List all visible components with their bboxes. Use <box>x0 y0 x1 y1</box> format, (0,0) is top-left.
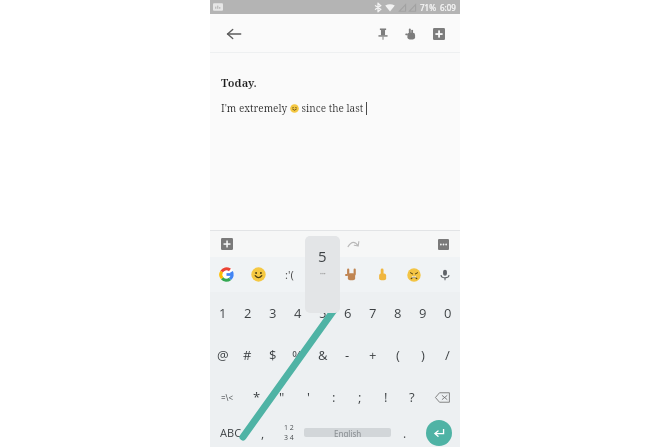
button[interactable]: Back <box>218 18 250 50</box>
staticText: 5 <box>319 304 327 322</box>
staticText: ) <box>421 346 425 364</box>
staticText: , <box>261 425 265 441</box>
button[interactable]: Number pad <box>274 418 304 447</box>
button[interactable]: ' <box>295 376 321 418</box>
staticText: English <box>334 428 362 437</box>
button[interactable]: Pointing up emoji <box>367 257 398 292</box>
button[interactable]: Enter <box>418 418 460 447</box>
button[interactable]: 4 <box>285 292 310 334</box>
button[interactable]: English <box>304 428 391 437</box>
staticText: ' <box>307 388 310 406</box>
button[interactable]: . <box>391 418 418 447</box>
button[interactable]: # <box>235 334 260 376</box>
button[interactable]: Redo <box>341 232 365 256</box>
button[interactable]: 3 <box>260 292 285 334</box>
staticText: ••• <box>320 271 326 278</box>
staticText: 6 <box>344 304 352 322</box>
button[interactable]: Google <box>210 257 242 292</box>
staticText: @ <box>217 346 229 364</box>
staticText: : <box>332 388 336 406</box>
staticText: - <box>345 346 350 364</box>
staticText: ! <box>384 388 388 406</box>
button[interactable]: * <box>244 376 269 418</box>
button[interactable]: Add <box>216 233 238 255</box>
staticText: ; <box>358 388 362 406</box>
button[interactable]: ; <box>347 376 373 418</box>
button[interactable]: :'( <box>274 257 305 292</box>
staticText: since the last <box>299 101 364 115</box>
button[interactable]: $ <box>260 334 285 376</box>
button[interactable]: ) <box>410 334 435 376</box>
button[interactable]: : <box>321 376 347 418</box>
staticText: 9 <box>419 304 427 322</box>
staticText: " <box>279 388 285 406</box>
button[interactable]: =\< <box>210 376 244 418</box>
button[interactable]: " <box>269 376 295 418</box>
staticText: ABC <box>220 425 242 440</box>
button[interactable]: 9 <box>410 292 435 334</box>
staticText: 1 2 <box>284 423 294 433</box>
staticText: . <box>403 425 407 441</box>
button[interactable]: - <box>335 334 360 376</box>
staticText: * <box>253 388 261 406</box>
staticText: 4 <box>294 304 302 322</box>
button[interactable]: Rock on emoji <box>336 257 367 292</box>
button[interactable]: 6 <box>335 292 360 334</box>
button[interactable]: ? <box>399 376 425 418</box>
button[interactable]: Undo <box>305 232 329 256</box>
staticText: 2 <box>244 304 252 322</box>
button[interactable]: 5 <box>310 292 335 334</box>
staticText: ? <box>409 388 415 406</box>
button[interactable]: Draw <box>397 20 425 48</box>
staticText: Today. <box>221 75 257 90</box>
button[interactable]: @ <box>210 334 235 376</box>
staticText: 1 <box>219 304 227 322</box>
staticText: 8 <box>394 304 402 322</box>
button[interactable]: + <box>360 334 385 376</box>
button[interactable]: Smiley emoji <box>242 257 274 292</box>
button[interactable]: More options <box>432 233 454 255</box>
button[interactable]: % <box>285 334 310 376</box>
button[interactable]: Add attachment <box>425 20 453 48</box>
staticText: $ <box>269 346 277 364</box>
staticText: 6:09 <box>440 2 456 13</box>
staticText: 5 <box>318 246 327 266</box>
staticText: ( <box>396 346 400 364</box>
staticText: + <box>369 346 377 364</box>
staticText: 7 <box>369 304 377 322</box>
button[interactable]: / <box>435 334 460 376</box>
button[interactable]: ( <box>385 334 410 376</box>
button[interactable]: Pin <box>369 20 397 48</box>
staticText: :'( <box>285 267 294 282</box>
button[interactable]: & <box>310 334 335 376</box>
staticText: I'm extremely <box>221 101 290 115</box>
button[interactable]: 0 <box>435 292 460 334</box>
button[interactable]: 1 <box>210 292 235 334</box>
staticText: 3 <box>269 304 277 322</box>
staticText: % <box>292 346 303 364</box>
button[interactable]: ABC <box>210 418 252 447</box>
button[interactable]: , <box>252 418 274 447</box>
staticText: =\< <box>221 392 234 403</box>
button[interactable]: 2 <box>235 292 260 334</box>
staticText: / <box>445 346 450 364</box>
staticText: & <box>318 346 328 364</box>
staticText: # <box>243 346 252 364</box>
button[interactable]: Sad emoji <box>398 257 429 292</box>
button[interactable]: Voice input <box>429 257 460 292</box>
button[interactable]: ! <box>373 376 399 418</box>
staticText: 0 <box>444 304 452 322</box>
button[interactable]: 7 <box>360 292 385 334</box>
button[interactable]: Backspace <box>425 376 460 418</box>
staticText: 3 4 <box>284 433 294 443</box>
button[interactable]: 8 <box>385 292 410 334</box>
staticText: 71% <box>420 2 436 13</box>
